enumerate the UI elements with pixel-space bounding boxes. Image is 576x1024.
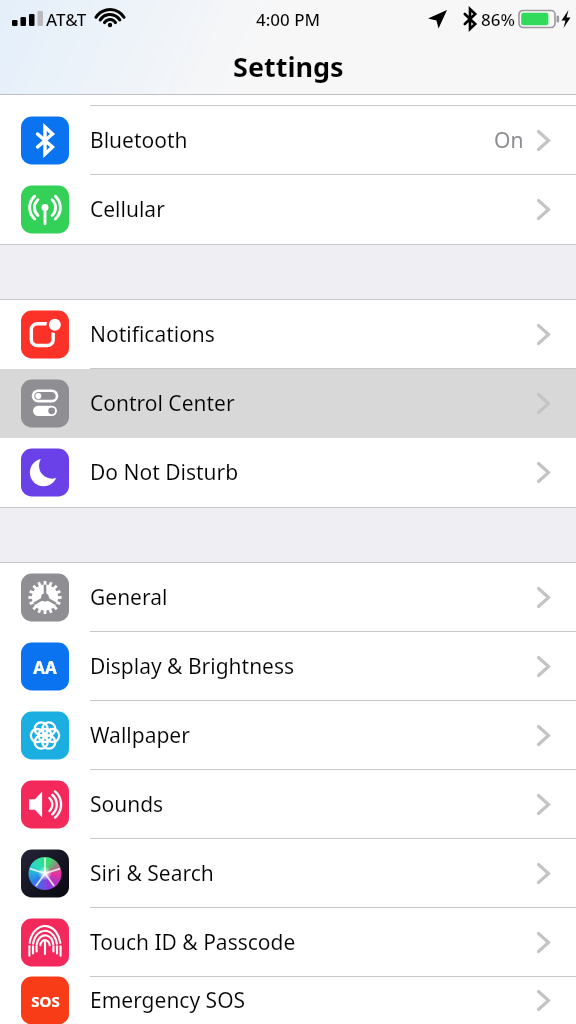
- button[interactable]: SOS: [0, 977, 576, 1024]
- staticText: 4:00 PM: [256, 8, 321, 31]
- staticText: Cellular: [90, 195, 165, 224]
- staticText: Wallpaper: [90, 721, 190, 750]
- button[interactable]: Do Not Disturb: [0, 438, 576, 507]
- staticText: Bluetooth: [90, 126, 188, 155]
- staticText: Do Not Disturb: [90, 458, 239, 487]
- staticText: Emergency SOS: [90, 986, 246, 1015]
- staticText: General: [90, 583, 168, 612]
- button[interactable]: Bluetooth: [0, 106, 576, 175]
- staticText: AT&T: [46, 8, 87, 31]
- staticText: SOS: [31, 991, 60, 1011]
- button[interactable]: Touch ID & Passcode: [0, 908, 576, 977]
- button[interactable]: General: [0, 563, 576, 632]
- button[interactable]: AA: [0, 632, 576, 701]
- staticText: AA: [33, 656, 57, 679]
- button[interactable]: Cellular: [0, 175, 576, 244]
- staticText: Settings: [233, 48, 344, 85]
- staticText: Notifications: [90, 320, 215, 349]
- staticText: On: [494, 126, 524, 155]
- staticText: Control Center: [90, 389, 235, 418]
- staticText: Touch ID & Passcode: [90, 928, 296, 957]
- staticText: Siri & Search: [90, 859, 214, 888]
- button[interactable]: Notifications: [0, 300, 576, 369]
- button[interactable]: Control Center: [0, 369, 576, 438]
- staticText: Display & Brightness: [90, 652, 295, 681]
- staticText: Sounds: [90, 790, 164, 819]
- button[interactable]: Siri & Search: [0, 839, 576, 908]
- button[interactable]: Wallpaper: [0, 701, 576, 770]
- button[interactable]: Sounds: [0, 770, 576, 839]
- staticText: 86%: [481, 8, 515, 31]
